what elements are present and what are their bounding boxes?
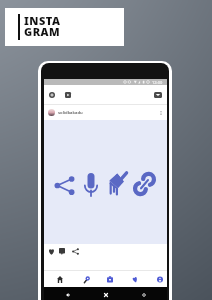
button[interactable]: Reels <box>65 92 71 98</box>
staticText: solidkakadu <box>58 110 83 116</box>
button[interactable]: solidkakadu <box>44 105 167 120</box>
button[interactable]: Direct messages <box>154 92 162 98</box>
button[interactable]: Comment <box>59 248 65 255</box>
button[interactable]: Like <box>48 248 55 255</box>
staticText: INSTA GRAM <box>24 13 61 39</box>
button[interactable]: Camera <box>102 271 118 287</box>
button[interactable]: Back <box>63 290 73 300</box>
button[interactable]: Profile <box>152 271 168 287</box>
button[interactable]: Home <box>101 290 111 300</box>
staticText: 12:00 <box>152 80 163 85</box>
button[interactable]: Recents <box>139 290 149 300</box>
button[interactable]: Home <box>52 271 68 287</box>
button[interactable]: Add to story <box>49 92 55 98</box>
button[interactable]: Search <box>79 271 95 287</box>
button[interactable]: Activity <box>127 271 143 287</box>
button[interactable]: Share post <box>72 248 79 255</box>
